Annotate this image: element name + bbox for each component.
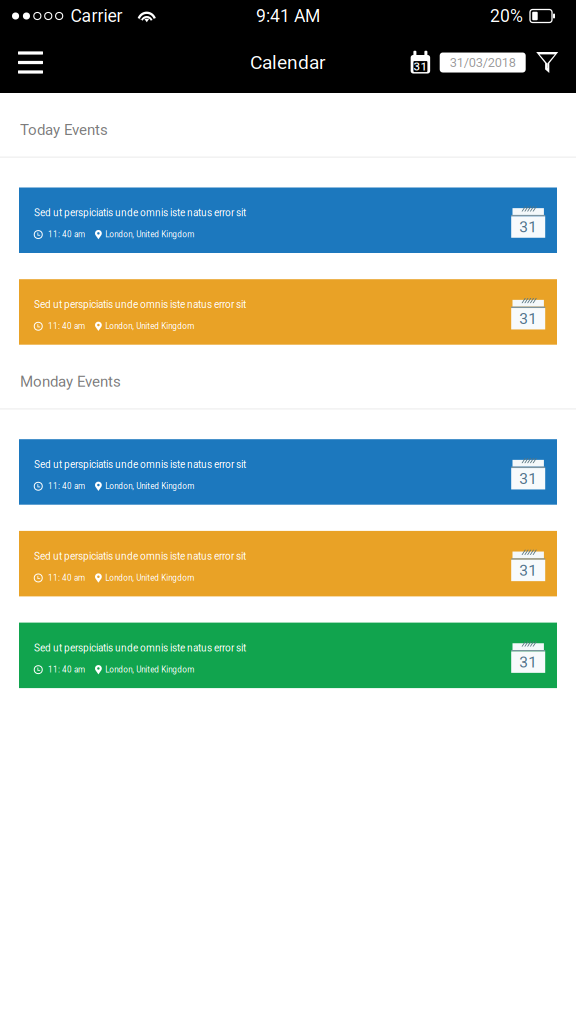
button[interactable]: Sed ut perspiciatis unde omnis iste natu… [19, 439, 557, 505]
staticText: London, United Kingdom [105, 321, 194, 331]
staticText: Sed ut perspiciatis unde omnis iste natu… [34, 459, 246, 470]
staticText: Sed ut perspiciatis unde omnis iste natu… [34, 207, 246, 219]
button[interactable]: 31/03/2018 [430, 52, 526, 72]
staticText: 11: 40 am [48, 321, 85, 331]
staticText: 31 [519, 470, 537, 488]
staticText: 20% [490, 6, 523, 26]
staticText: 11: 40 am [48, 665, 85, 674]
button[interactable]: Sed ut perspiciatis unde omnis iste natu… [19, 279, 557, 345]
staticText: 11: 40 am [48, 481, 85, 491]
staticText: 31 [519, 653, 537, 671]
staticText: London, United Kingdom [105, 481, 194, 491]
staticText: Monday Events [20, 373, 121, 390]
staticText: London, United Kingdom [105, 230, 194, 239]
staticText: 31 [519, 310, 537, 328]
staticText: 31 [519, 561, 537, 579]
staticText: London, United Kingdom [105, 665, 194, 674]
button[interactable]: Sed ut perspiciatis unde omnis iste natu… [19, 623, 557, 688]
button[interactable]: Menu [0, 42, 61, 82]
button[interactable]: Sed ut perspiciatis unde omnis iste natu… [19, 187, 557, 253]
staticText: Calendar [250, 51, 326, 74]
staticText: London, United Kingdom [105, 573, 194, 583]
staticText: 9:41 AM [256, 6, 320, 26]
staticText: Sed ut perspiciatis unde omnis iste natu… [34, 550, 246, 562]
button[interactable]: Pick a date [410, 44, 430, 80]
staticText: 11: 40 am [48, 573, 85, 583]
staticText: Sed ut perspiciatis unde omnis iste natu… [34, 642, 246, 654]
staticText: Sed ut perspiciatis unde omnis iste natu… [34, 299, 246, 310]
staticText: 31 [519, 218, 537, 236]
staticText: 11: 40 am [48, 230, 85, 239]
button[interactable]: Sed ut perspiciatis unde omnis iste natu… [19, 531, 557, 596]
staticText: Carrier [70, 6, 122, 26]
staticText: Today Events [20, 121, 108, 139]
button[interactable]: Filter [526, 46, 576, 79]
staticText: 31 [413, 60, 427, 73]
staticText: 31/03/2018 [450, 55, 516, 70]
